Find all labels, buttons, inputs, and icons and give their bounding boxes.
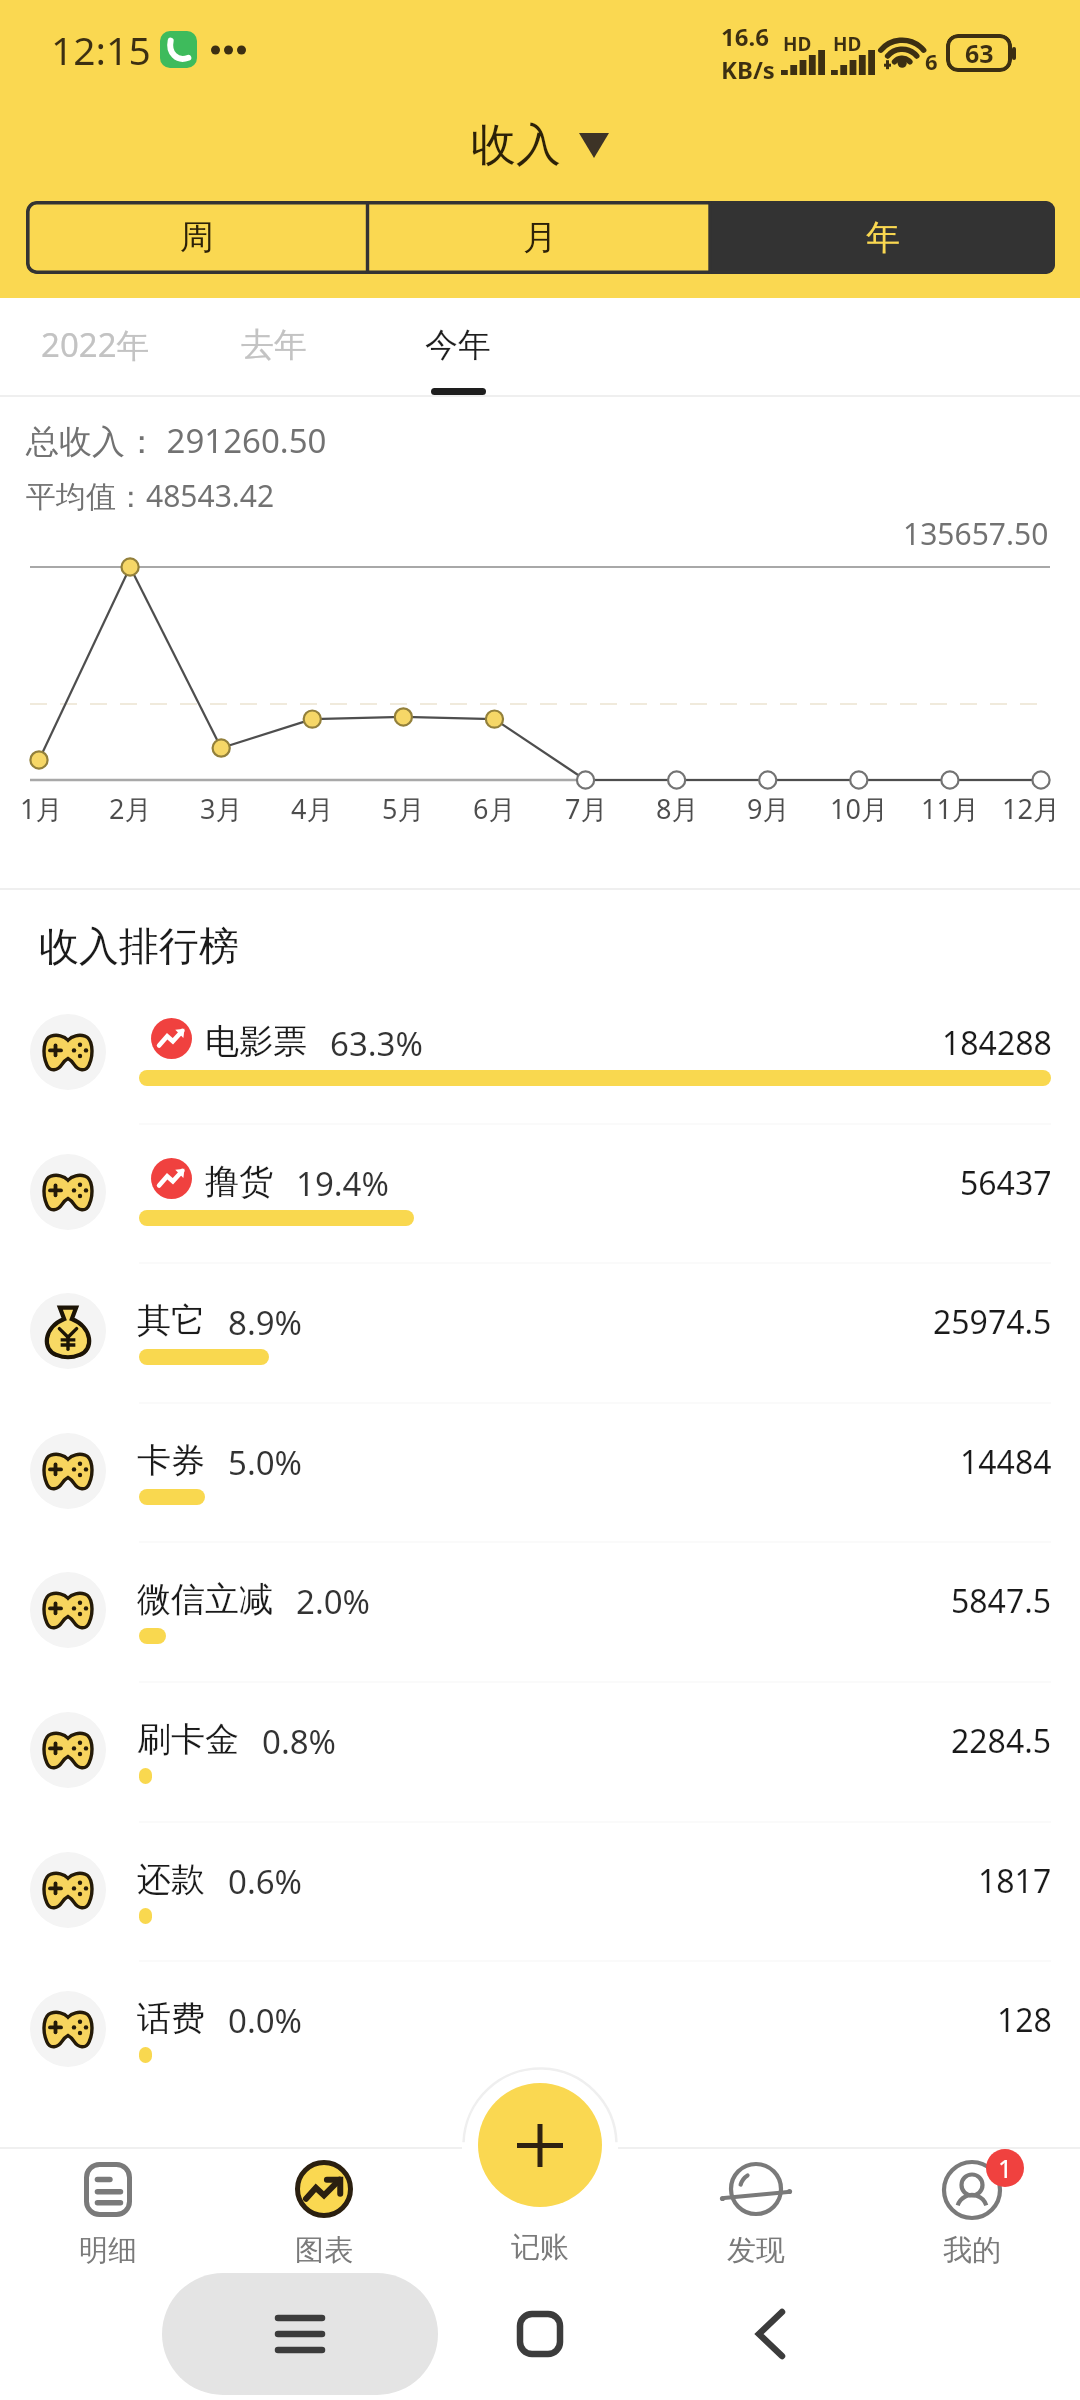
staticText: 撸货	[205, 1160, 273, 1203]
staticText: 0.6%	[228, 1859, 303, 1904]
staticText: 25974.5	[933, 1300, 1052, 1340]
button[interactable]: 去年	[186, 298, 362, 397]
button[interactable]: 撸货	[0, 1122, 1080, 1262]
staticText: 2.0%	[296, 1579, 371, 1624]
staticText: 6月	[473, 790, 516, 824]
staticText: 明细	[79, 2232, 137, 2269]
staticText: 63.3%	[330, 1021, 423, 1066]
button[interactable]: 图表	[234, 2158, 414, 2270]
staticText: 去年	[241, 324, 307, 366]
staticText: 3月	[200, 790, 243, 824]
staticText: 话费	[137, 1997, 205, 2040]
button[interactable]: 今年	[370, 298, 546, 397]
staticText: HD	[783, 31, 812, 57]
staticText: 2月	[109, 790, 152, 824]
staticText: 还款	[137, 1858, 205, 1901]
staticText: 8.9%	[228, 1300, 303, 1345]
staticText: 1月	[20, 790, 63, 824]
staticText: 12:15	[51, 23, 151, 76]
staticText: 12月	[1002, 790, 1060, 824]
staticText: 56437	[960, 1161, 1052, 1201]
button[interactable]: 2022年	[7, 298, 183, 397]
staticText: 0.0%	[228, 1998, 303, 2043]
button[interactable]: 明细	[18, 2158, 198, 2270]
staticText: 5.0%	[228, 1440, 303, 1485]
staticText: 微信立减	[137, 1578, 273, 1621]
button[interactable]: 月	[370, 201, 710, 274]
staticText: 年	[866, 216, 900, 259]
button[interactable]: 其它	[0, 1261, 1080, 1401]
button[interactable]: 发现	[666, 2158, 846, 2270]
button[interactable]: 收入	[440, 108, 640, 182]
staticText: 0.8%	[262, 1719, 337, 1764]
button[interactable]: 刷卡金	[0, 1680, 1080, 1820]
button[interactable]: Back	[720, 2296, 820, 2372]
staticText: 月	[523, 216, 557, 259]
staticText: 刷卡金	[137, 1718, 239, 1761]
staticText: 发现	[727, 2232, 785, 2269]
staticText: 总收入： 291260.50	[26, 418, 327, 463]
staticText: 电影票	[205, 1020, 307, 1063]
staticText: 5847.5	[951, 1579, 1052, 1619]
staticText: 我的	[943, 2232, 1001, 2269]
staticText: HD	[833, 31, 862, 57]
staticText: 今年	[425, 324, 491, 366]
button[interactable]: 记账 新增一笔	[450, 2083, 630, 2269]
staticText: 2022年	[41, 322, 150, 367]
staticText: 2284.5	[951, 1719, 1052, 1759]
button[interactable]: Recents	[162, 2273, 438, 2395]
staticText: 16.6	[721, 20, 769, 53]
staticText: 19.4%	[296, 1161, 389, 1206]
staticText: 卡券	[137, 1439, 205, 1482]
staticText: KB/s	[721, 53, 775, 86]
staticText: 9月	[747, 790, 790, 824]
staticText: 平均值：48543.42	[26, 475, 275, 516]
button[interactable]: Home	[490, 2296, 590, 2372]
staticText: 1	[998, 2151, 1013, 2185]
staticText: 5月	[382, 790, 425, 824]
button[interactable]: 年	[710, 201, 1055, 274]
staticText: 收入	[471, 117, 561, 174]
staticText: 128	[997, 1998, 1052, 2038]
staticText: 图表	[295, 2232, 353, 2269]
staticText: 6	[925, 46, 938, 76]
button[interactable]: 卡券	[0, 1401, 1080, 1541]
staticText: 11月	[921, 790, 979, 824]
staticText: 63	[965, 36, 994, 70]
button[interactable]: 还款	[0, 1820, 1080, 1960]
button[interactable]: 话费	[0, 1959, 1080, 2099]
staticText: 其它	[137, 1299, 205, 1342]
staticText: 1817	[978, 1859, 1052, 1899]
staticText: 135657.50	[903, 513, 1049, 554]
staticText: 记账	[511, 2229, 569, 2266]
staticText: 10月	[830, 790, 888, 824]
staticText: 周	[180, 216, 214, 259]
button[interactable]: 周	[26, 201, 367, 274]
staticText: 8月	[656, 790, 699, 824]
staticText: 4月	[291, 790, 334, 824]
staticText: 14484	[960, 1440, 1052, 1480]
button[interactable]: 微信立减	[0, 1540, 1080, 1680]
staticText: 7月	[565, 790, 608, 824]
staticText: 184288	[942, 1021, 1052, 1061]
button[interactable]: 1	[882, 2158, 1062, 2270]
staticText: 收入排行榜	[39, 921, 239, 971]
button[interactable]: 电影票	[0, 982, 1080, 1122]
